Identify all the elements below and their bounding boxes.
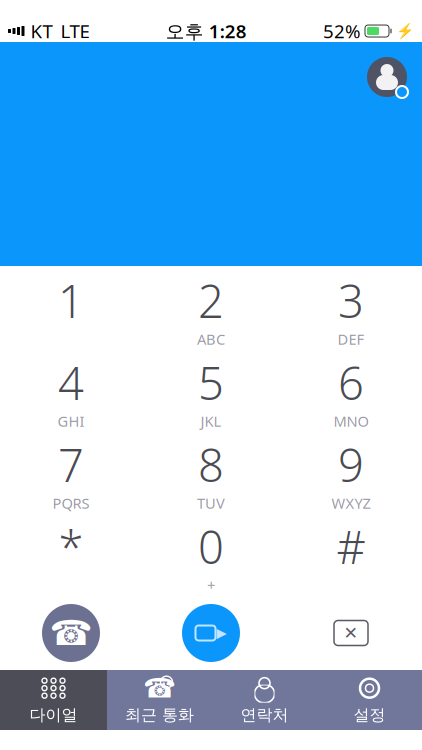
button[interactable]: 설정	[317, 670, 422, 730]
staticText: ▶	[216, 625, 226, 640]
staticText: LTE	[60, 19, 89, 43]
staticText: PQRS	[52, 493, 89, 513]
staticText: +	[207, 575, 215, 595]
button[interactable]: 다이얼	[0, 670, 107, 730]
staticText: ⚡	[396, 23, 414, 39]
staticText: ABC	[197, 329, 225, 349]
staticText: 1	[58, 270, 84, 331]
staticText: MNO	[333, 411, 368, 431]
button[interactable]: Video call	[141, 598, 281, 668]
staticText: 52%	[323, 19, 361, 43]
button[interactable]: 2	[141, 267, 281, 349]
button[interactable]: 5	[141, 349, 281, 431]
staticText: 6	[338, 352, 364, 413]
button[interactable]: 4	[1, 349, 141, 431]
button[interactable]: 7	[1, 431, 141, 513]
staticText: 4	[58, 352, 84, 413]
button[interactable]: Profile	[366, 56, 408, 98]
staticText: ☎	[143, 673, 176, 703]
staticText: GHI	[57, 411, 84, 431]
staticText: 연락처	[240, 705, 288, 725]
staticText: 0	[198, 516, 224, 577]
staticText: ✕	[343, 623, 358, 643]
staticText: ☎	[49, 613, 92, 653]
staticText: #	[336, 516, 365, 577]
button[interactable]: Voice call	[1, 598, 141, 668]
button[interactable]: 1	[1, 267, 141, 349]
button[interactable]: #	[281, 513, 421, 595]
staticText: WXYZ	[331, 493, 370, 513]
staticText: KT	[30, 19, 52, 43]
staticText: JKL	[200, 411, 221, 431]
staticText: 3	[338, 270, 364, 331]
button[interactable]: 8	[141, 431, 281, 513]
button[interactable]: ☎	[107, 670, 212, 730]
staticText: 최근 통화	[125, 705, 194, 725]
staticText: 9	[338, 434, 364, 495]
staticText: 설정	[353, 705, 385, 725]
staticText: 8	[198, 434, 224, 495]
staticText: 오후 1:28	[166, 19, 247, 43]
staticText: DEF	[337, 329, 364, 349]
button[interactable]: *	[1, 513, 141, 595]
staticText: TUV	[197, 493, 225, 513]
staticText: 2	[198, 270, 224, 331]
button[interactable]: 3	[281, 267, 421, 349]
button[interactable]: 6	[281, 349, 421, 431]
staticText: 5	[198, 352, 224, 413]
staticText: 7	[58, 434, 84, 495]
staticText: 다이얼	[29, 705, 77, 725]
staticText: *	[58, 516, 83, 577]
button[interactable]: 0	[141, 513, 281, 595]
button[interactable]: Delete	[281, 598, 421, 668]
button[interactable]: 9	[281, 431, 421, 513]
button[interactable]: 연락처	[212, 670, 317, 730]
